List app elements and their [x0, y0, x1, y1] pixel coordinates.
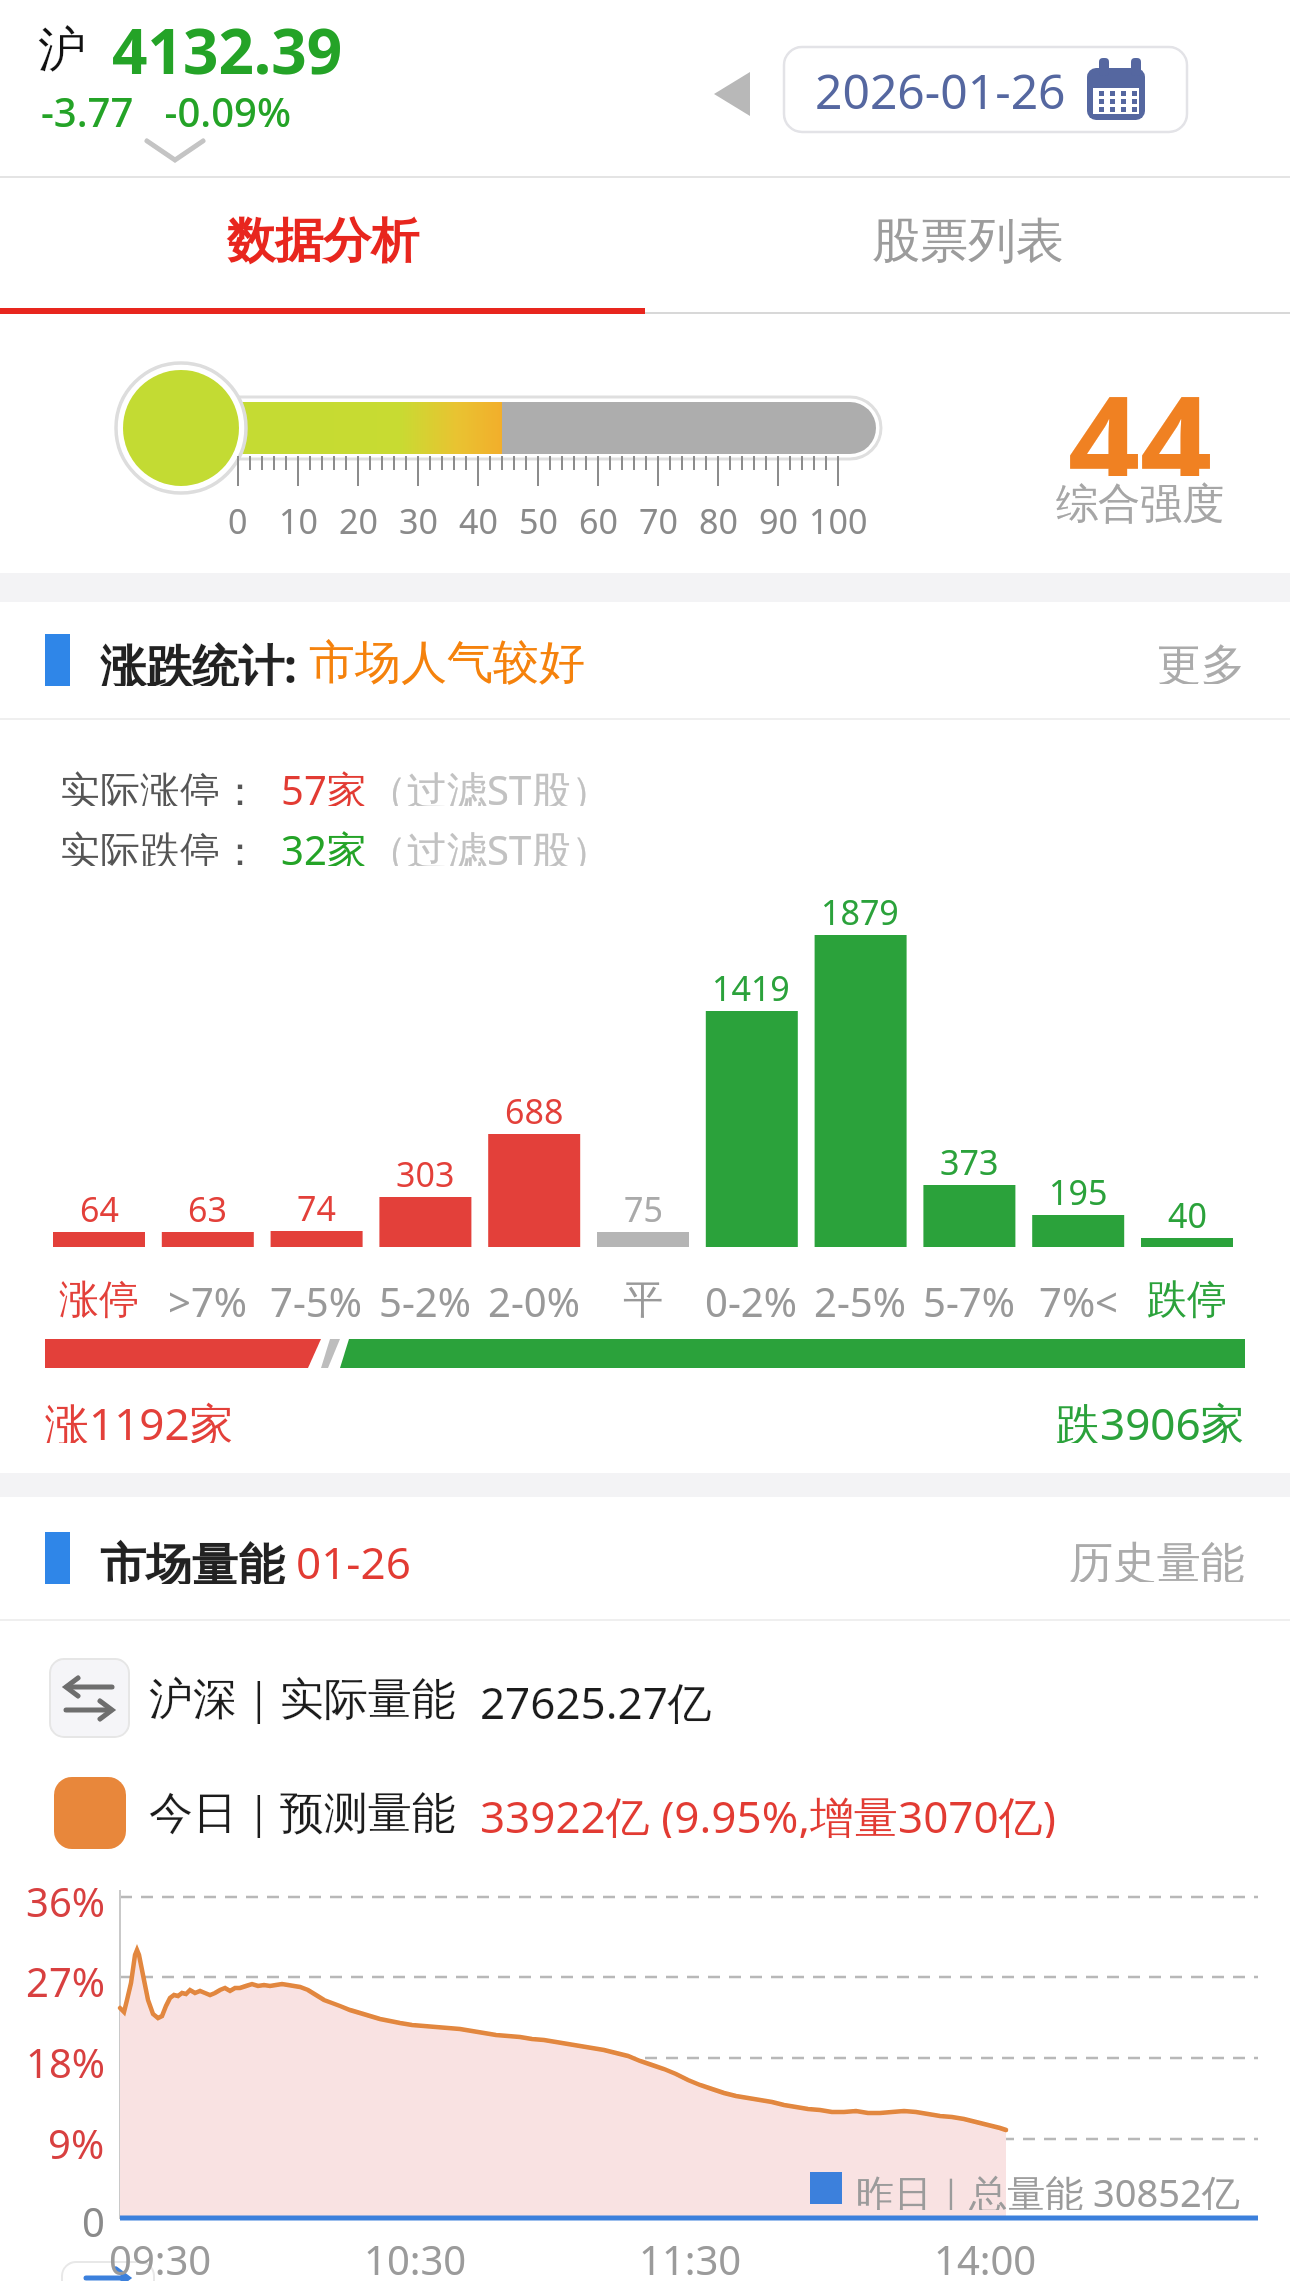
staticText: 32家	[281, 822, 367, 866]
staticText: 5-7%	[923, 1274, 1015, 1322]
staticText: 303	[396, 1151, 455, 1191]
staticText: 27%	[26, 1954, 105, 2000]
staticText: 市场量能	[100, 1532, 296, 1584]
staticText: 40	[459, 498, 498, 536]
staticText: 11:30	[639, 2232, 742, 2276]
staticText: 2-5%	[814, 1274, 906, 1322]
staticText: 平	[623, 1274, 663, 1322]
staticText: 7-5%	[270, 1274, 362, 1322]
staticText: 18%	[26, 2035, 105, 2081]
staticText: 涨停	[59, 1274, 139, 1322]
staticText: 74	[297, 1185, 336, 1225]
staticText: 44	[1068, 352, 1213, 476]
staticText: 70	[639, 498, 678, 536]
staticText: 1879	[821, 889, 899, 929]
staticText: 10	[279, 498, 318, 536]
button[interactable]: 2026-01-26	[800, 52, 1080, 128]
staticText: 60	[579, 498, 618, 536]
staticText: 数据分析	[227, 211, 419, 271]
staticText: 更多	[1157, 638, 1245, 684]
staticText: 0-2%	[705, 1274, 797, 1322]
staticText: 4132.39	[112, 8, 343, 80]
staticText: 75	[624, 1186, 663, 1226]
staticText: 2026-01-26	[815, 58, 1066, 123]
staticText: 跌停	[1147, 1274, 1227, 1322]
staticText: 195	[1049, 1169, 1108, 1209]
staticText: 昨日｜总量能 30852亿	[856, 2166, 1240, 2210]
staticText: 市场人气较好	[309, 634, 585, 686]
staticText: 09:30	[109, 2232, 212, 2276]
staticText: 综合强度	[1056, 478, 1224, 528]
staticText: 30	[399, 498, 438, 536]
staticText: >7%	[168, 1274, 247, 1322]
staticText: 90	[759, 498, 798, 536]
staticText: 63	[188, 1186, 227, 1226]
staticText: 2-0%	[488, 1274, 580, 1322]
staticText: 57家	[281, 762, 367, 806]
button[interactable]: 股票列表	[645, 205, 1290, 277]
staticText: 0	[82, 2194, 105, 2240]
staticText: 27625.27亿	[457, 1672, 712, 1724]
staticText: 今日｜预测量能	[149, 1786, 457, 1838]
staticText: 10:30	[364, 2232, 467, 2276]
staticText: 沪	[38, 20, 86, 80]
staticText: （过滤ST股）	[367, 762, 612, 806]
staticText: 1419	[712, 965, 790, 1005]
staticText: 33922亿 (9.95%,增量3070亿)	[457, 1786, 1056, 1838]
staticText: 100	[809, 498, 868, 536]
button[interactable]: 历史量能	[1000, 1536, 1245, 1582]
staticText: 64	[80, 1186, 119, 1226]
staticText: 9%	[48, 2116, 105, 2162]
staticText: 0	[228, 498, 248, 536]
button[interactable]: 更多	[1100, 638, 1245, 684]
staticText: 36%	[26, 1874, 105, 1920]
staticText: （过滤ST股）	[367, 822, 612, 866]
staticText: 80	[699, 498, 738, 536]
staticText: 实际涨停：	[60, 762, 281, 806]
staticText: 7%<	[1039, 1274, 1118, 1322]
staticText: 40	[1168, 1192, 1207, 1232]
staticText: 涨跌统计:	[100, 634, 309, 686]
staticText: 14:00	[934, 2232, 1037, 2276]
staticText: 沪深｜实际量能	[149, 1672, 457, 1724]
staticText: 跌3906家	[1056, 1393, 1245, 1443]
staticText: 20	[339, 498, 378, 536]
staticText: 01-26	[296, 1532, 411, 1584]
staticText: 实际跌停：	[60, 822, 281, 866]
staticText: 5-2%	[379, 1274, 471, 1322]
button[interactable]: 数据分析	[0, 205, 645, 277]
staticText: -3.77 -0.09%	[41, 84, 291, 130]
staticText: 历史量能	[1069, 1536, 1245, 1582]
staticText: 373	[940, 1139, 999, 1179]
staticText: 涨1192家	[45, 1393, 234, 1443]
staticText: 50	[519, 498, 558, 536]
staticText: 股票列表	[872, 211, 1064, 271]
staticText: 688	[505, 1088, 564, 1128]
